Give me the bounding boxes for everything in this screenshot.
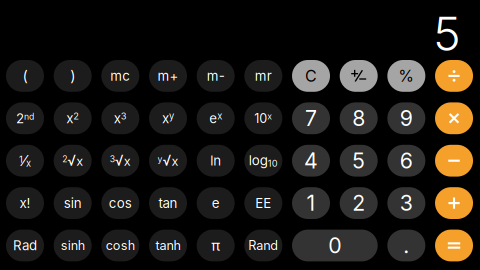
- staticText: e: [212, 195, 220, 211]
- button[interactable]: 4: [292, 145, 330, 177]
- button[interactable]: 5: [340, 145, 378, 177]
- staticText: ex: [209, 110, 222, 126]
- button[interactable]: xy: [149, 102, 187, 134]
- staticText: .: [403, 233, 409, 258]
- button[interactable]: EE: [244, 187, 282, 219]
- button[interactable]: minus: [435, 145, 473, 177]
- staticText: x2: [66, 110, 79, 126]
- button[interactable]: 10x: [244, 102, 282, 134]
- staticText: tanh: [155, 238, 180, 253]
- button[interactable]: divide: [435, 60, 473, 92]
- staticText: 3√x: [110, 152, 131, 169]
- button[interactable]: 2 root of x: [54, 145, 92, 177]
- staticText: m+: [157, 68, 178, 84]
- staticText: xy: [162, 110, 174, 126]
- button[interactable]: 3 root of x: [101, 145, 139, 177]
- staticText: x3: [114, 110, 127, 126]
- button[interactable]: ln: [197, 145, 235, 177]
- button[interactable]: 7: [292, 102, 330, 134]
- button[interactable]: sinh: [54, 230, 92, 261]
- staticText: x!: [19, 195, 30, 211]
- staticText: 9: [400, 105, 413, 131]
- button[interactable]: ): [54, 60, 92, 92]
- button[interactable]: mc: [101, 60, 139, 92]
- button[interactable]: one over x: [6, 145, 44, 177]
- button[interactable]: (: [6, 60, 44, 92]
- button[interactable]: 2: [340, 187, 378, 219]
- button[interactable]: x2: [54, 102, 92, 134]
- staticText: ln: [210, 153, 221, 169]
- staticText: 2nd: [16, 110, 34, 126]
- staticText: log10: [249, 153, 278, 169]
- staticText: 6: [400, 148, 413, 174]
- staticText: C: [305, 66, 317, 86]
- staticText: 0: [328, 233, 341, 258]
- staticText: 7: [305, 105, 317, 131]
- staticText: ): [70, 67, 75, 85]
- staticText: 3: [400, 190, 413, 216]
- staticText: (: [22, 67, 27, 85]
- staticText: y√x: [157, 152, 178, 169]
- button[interactable]: multiply: [435, 102, 473, 134]
- staticText: 10x: [254, 111, 272, 126]
- staticText: sinh: [61, 238, 85, 253]
- button[interactable]: 3: [387, 187, 425, 219]
- button[interactable]: x factorial: [6, 187, 44, 219]
- staticText: mr: [255, 68, 272, 84]
- button[interactable]: plus: [435, 187, 473, 219]
- button[interactable]: Rand: [244, 230, 282, 261]
- staticText: 2√x: [62, 152, 83, 169]
- button[interactable]: plus minus: [340, 60, 378, 92]
- button[interactable]: ex: [197, 102, 235, 134]
- button[interactable]: cos: [101, 187, 139, 219]
- button[interactable]: m minus: [197, 60, 235, 92]
- button[interactable]: decimal point: [387, 230, 425, 261]
- staticText: 1: [306, 190, 315, 216]
- staticText: 5: [352, 148, 365, 174]
- staticText: 8: [352, 105, 365, 131]
- button[interactable]: Clear: [292, 60, 330, 92]
- button[interactable]: e: [197, 187, 235, 219]
- staticText: m-: [207, 68, 225, 84]
- button[interactable]: log10: [244, 145, 282, 177]
- staticText: 1⁄x: [19, 152, 31, 169]
- staticText: Rad: [13, 237, 37, 253]
- button[interactable]: 6: [387, 145, 425, 177]
- button[interactable]: tan: [149, 187, 187, 219]
- staticText: 4: [304, 148, 318, 174]
- button[interactable]: pi: [197, 230, 235, 261]
- staticText: sin: [64, 195, 82, 211]
- staticText: %: [398, 66, 414, 86]
- button[interactable]: 0: [292, 230, 378, 261]
- staticText: cosh: [106, 238, 135, 253]
- button[interactable]: mr: [244, 60, 282, 92]
- button[interactable]: tanh: [149, 230, 187, 261]
- button[interactable]: sin: [54, 187, 92, 219]
- button[interactable]: 9: [387, 102, 425, 134]
- staticText: tan: [158, 195, 177, 211]
- button[interactable]: x3: [101, 102, 139, 134]
- button[interactable]: y root of x: [149, 145, 187, 177]
- button[interactable]: 2nd: [6, 102, 44, 134]
- staticText: mc: [110, 68, 130, 84]
- staticText: Rand: [248, 238, 278, 253]
- button[interactable]: Rad: [6, 230, 44, 261]
- button[interactable]: m+: [149, 60, 187, 92]
- staticText: 2: [352, 190, 365, 216]
- staticText: cos: [109, 195, 132, 211]
- button[interactable]: percent: [387, 60, 425, 92]
- button[interactable]: cosh: [101, 230, 139, 261]
- staticText: π: [211, 237, 220, 254]
- button[interactable]: equals: [435, 230, 473, 261]
- button[interactable]: 8: [340, 102, 378, 134]
- staticText: EE: [255, 195, 271, 211]
- staticText: 5: [433, 5, 461, 62]
- button[interactable]: 1: [292, 187, 330, 219]
